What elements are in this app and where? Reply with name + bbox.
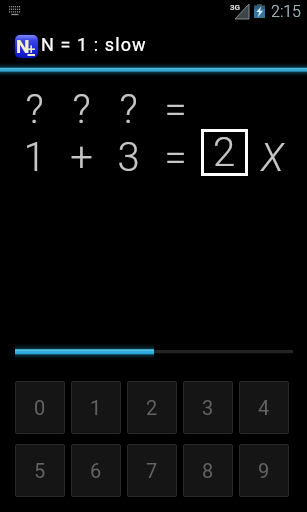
staticText: 2:15	[271, 2, 301, 21]
staticText: =	[164, 86, 187, 133]
button[interactable]: 1	[71, 381, 121, 434]
staticText: 2	[146, 396, 158, 419]
staticText: N = 1 : slow	[41, 34, 147, 55]
staticText: 3G	[230, 3, 241, 12]
button[interactable]: 8	[183, 444, 233, 497]
button[interactable]: 2	[127, 381, 177, 434]
staticText: 5	[34, 459, 46, 482]
staticText: 3	[202, 396, 214, 419]
staticText: 2	[213, 129, 236, 176]
staticText: 1	[23, 134, 46, 181]
button[interactable]: 3	[183, 381, 233, 434]
staticText: ?	[119, 86, 138, 133]
other: Application icon	[11, 31, 41, 61]
staticText: 6	[90, 459, 102, 482]
button[interactable]: 0	[15, 381, 65, 434]
staticText: ?	[25, 86, 44, 133]
staticText: 3	[117, 134, 140, 181]
button[interactable]: 4	[239, 381, 289, 434]
staticText: =	[164, 134, 187, 181]
staticText: 1	[90, 396, 102, 419]
staticText: 8	[202, 459, 214, 482]
staticText: 0	[34, 396, 46, 419]
button[interactable]: 9	[239, 444, 289, 497]
staticText: 7	[146, 459, 158, 482]
button[interactable]: 2	[201, 129, 248, 176]
button[interactable]: 5	[15, 444, 65, 497]
button[interactable]: 7	[127, 444, 177, 497]
staticText: ?	[72, 86, 91, 133]
staticText: X	[261, 136, 284, 181]
staticText: N	[16, 35, 30, 57]
button[interactable]: 6	[71, 444, 121, 497]
staticText: 4	[258, 396, 270, 419]
staticText: +	[70, 134, 93, 181]
staticText: 9	[258, 459, 270, 482]
